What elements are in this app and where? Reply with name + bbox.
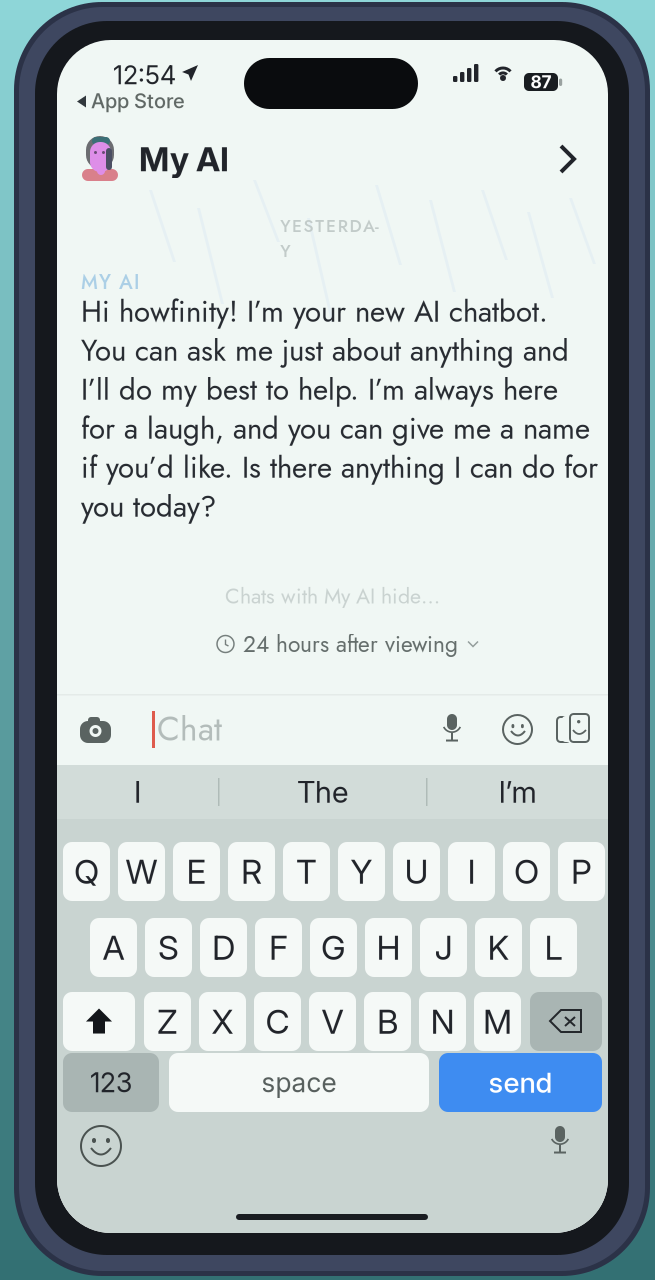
- staticText: 87: [530, 71, 551, 92]
- button[interactable]: Voice message: [441, 714, 463, 744]
- button[interactable]: Shift: [63, 992, 135, 1051]
- button[interactable]: send: [439, 1053, 602, 1112]
- staticText: you today?: [81, 485, 216, 528]
- staticText: I’m: [498, 774, 536, 810]
- staticText: P: [571, 851, 592, 892]
- button[interactable]: A: [90, 918, 137, 977]
- staticText: 24 hours after viewing: [243, 628, 458, 660]
- button[interactable]: X: [199, 992, 246, 1051]
- staticText: G: [321, 927, 346, 968]
- button[interactable]: My AI: [57, 124, 387, 194]
- staticText: if you’d like. Is there anything I can d…: [81, 446, 598, 489]
- button[interactable]: E: [173, 842, 220, 901]
- staticText: X: [211, 1001, 233, 1042]
- staticText: Z: [157, 1001, 178, 1042]
- staticText: N: [430, 1001, 454, 1042]
- staticText: 12:54: [113, 60, 176, 90]
- button[interactable]: Z: [144, 992, 191, 1051]
- button[interactable]: O: [503, 842, 550, 901]
- staticText: J: [434, 927, 452, 968]
- button[interactable]: Dictate: [545, 1124, 575, 1158]
- staticText: T: [296, 851, 317, 892]
- staticText: D: [212, 927, 235, 968]
- button[interactable]: Emoji: [81, 1126, 121, 1166]
- staticText: send: [488, 1066, 552, 1099]
- staticText: O: [514, 851, 539, 892]
- staticText: V: [321, 1001, 343, 1042]
- staticText: S: [158, 927, 179, 968]
- button[interactable]: 123: [63, 1053, 159, 1112]
- staticText: W: [125, 851, 157, 892]
- button[interactable]: Camera: [80, 717, 111, 743]
- button[interactable]: The: [219, 765, 426, 819]
- button[interactable]: M: [474, 992, 521, 1051]
- button[interactable]: P: [558, 842, 605, 901]
- button[interactable]: Profile: [536, 124, 600, 194]
- staticText: F: [269, 927, 288, 968]
- staticText: App Store: [91, 89, 185, 113]
- staticText: A: [102, 927, 124, 968]
- button[interactable]: space: [169, 1053, 429, 1112]
- staticText: R: [241, 851, 262, 892]
- button[interactable]: N: [419, 992, 466, 1051]
- button[interactable]: Delete: [530, 992, 602, 1051]
- staticText: YESTERDAY: [280, 213, 386, 238]
- staticText: K: [487, 927, 509, 968]
- staticText: E: [186, 851, 206, 892]
- button[interactable]: G: [310, 918, 357, 977]
- button[interactable]: L: [530, 918, 577, 977]
- button[interactable]: Q: [63, 842, 110, 901]
- button[interactable]: V: [309, 992, 356, 1051]
- staticText: I: [134, 774, 141, 810]
- button[interactable]: U: [393, 842, 440, 901]
- button[interactable]: I: [448, 842, 495, 901]
- button[interactable]: Y: [338, 842, 385, 901]
- staticText: H: [376, 927, 400, 968]
- button[interactable]: 24 hours after viewing: [217, 632, 479, 656]
- button[interactable]: B: [364, 992, 411, 1051]
- button[interactable]: F: [255, 918, 302, 977]
- staticText: C: [265, 1001, 289, 1042]
- button[interactable]: Stickers: [503, 715, 532, 744]
- staticText: Chats with My AI hide…: [225, 581, 440, 611]
- staticText: I’ll do my best to help. I’m always here: [81, 368, 558, 411]
- staticText: for a laugh, and you can give me a name: [81, 407, 590, 450]
- button[interactable]: Cameos: [557, 714, 591, 744]
- staticText: M: [483, 1001, 512, 1042]
- staticText: U: [404, 851, 428, 892]
- button[interactable]: R: [228, 842, 275, 901]
- staticText: You can ask me just about anything and: [81, 329, 569, 372]
- staticText: I: [467, 851, 475, 892]
- button[interactable]: I: [57, 765, 218, 819]
- staticText: B: [377, 1001, 398, 1042]
- staticText: Chat: [157, 705, 222, 753]
- staticText: Q: [74, 851, 99, 892]
- button[interactable]: W: [118, 842, 165, 901]
- staticText: MY AI: [81, 267, 140, 296]
- button[interactable]: D: [200, 918, 247, 977]
- staticText: L: [544, 927, 562, 968]
- button[interactable]: T: [283, 842, 330, 901]
- staticText: My AI: [139, 139, 229, 179]
- button[interactable]: I’m: [427, 765, 608, 819]
- staticText: The: [297, 774, 348, 810]
- button[interactable]: J: [420, 918, 467, 977]
- button[interactable]: H: [365, 918, 412, 977]
- button[interactable]: C: [254, 992, 301, 1051]
- staticText: Y: [350, 851, 372, 892]
- button[interactable]: K: [475, 918, 522, 977]
- button[interactable]: S: [145, 918, 192, 977]
- staticText: space: [261, 1066, 336, 1099]
- staticText: 123: [90, 1066, 132, 1099]
- staticText: Hi howfinity! I’m your new AI chatbot.: [81, 290, 548, 333]
